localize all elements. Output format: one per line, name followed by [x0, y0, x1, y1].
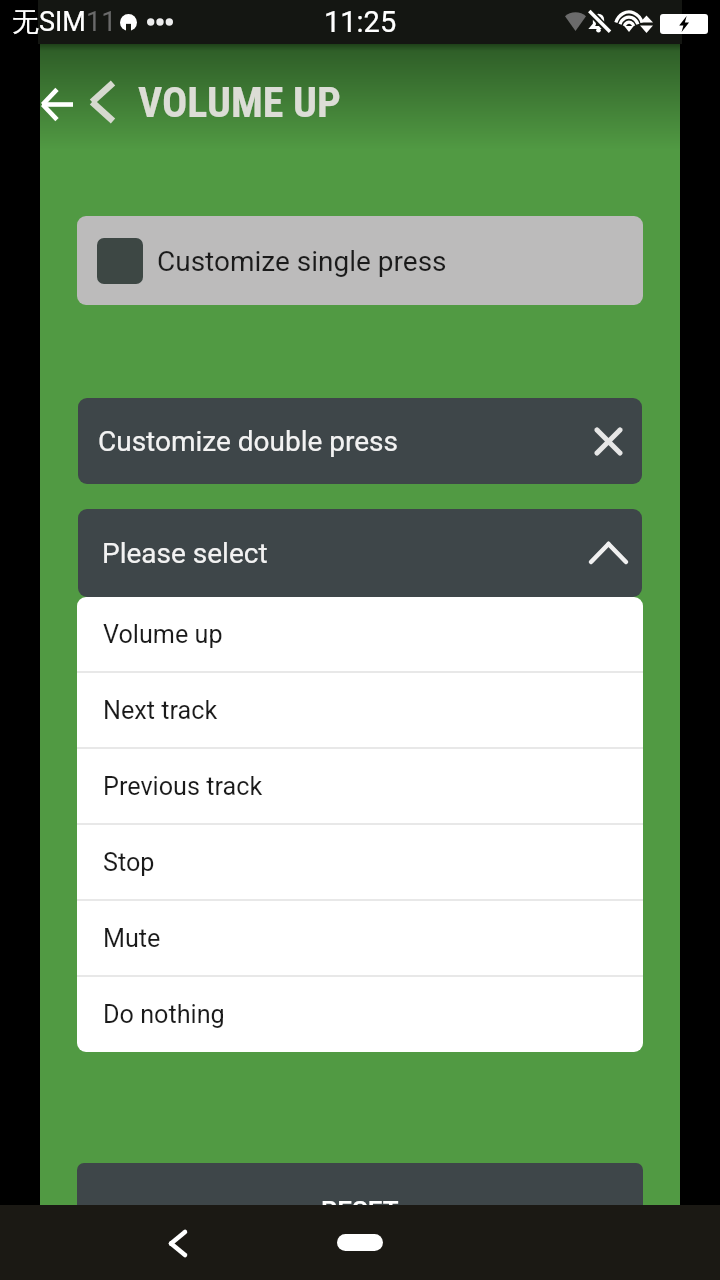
staticText: Do nothing [103, 1000, 225, 1030]
button[interactable]: Navigate back [38, 86, 75, 122]
staticText: VOLUME UP [138, 78, 341, 127]
staticText: RESET [321, 1196, 399, 1205]
staticText: Stop [103, 848, 155, 878]
button[interactable]: Previous track [77, 749, 643, 825]
staticText: 11 [86, 6, 117, 38]
button[interactable]: Volume up [77, 597, 643, 673]
button[interactable]: Customize single press [77, 216, 643, 305]
staticText: Customize double press [98, 425, 399, 458]
staticText: Mute [103, 924, 161, 954]
button[interactable]: Collapse [586, 531, 630, 575]
button[interactable]: Back [150, 1215, 206, 1271]
button[interactable]: Mute [77, 901, 643, 977]
staticText: 无SIM [12, 5, 86, 39]
button[interactable]: RESET [77, 1163, 643, 1205]
staticText: Volume up [103, 620, 223, 650]
button[interactable]: Next track [77, 673, 643, 749]
staticText: 11:25 [324, 5, 397, 39]
button[interactable]: Close [588, 421, 628, 461]
staticText: Customize single press [157, 245, 447, 278]
staticText: Previous track [103, 772, 263, 802]
button[interactable]: Customize double press [78, 398, 642, 484]
button[interactable]: Do nothing [77, 977, 643, 1052]
button[interactable]: Back [76, 76, 128, 128]
button[interactable]: Home [337, 1234, 383, 1251]
staticText: Next track [103, 696, 218, 726]
staticText: Please select [102, 537, 268, 570]
button[interactable]: Stop [77, 825, 643, 901]
button[interactable]: Please select [78, 509, 642, 597]
